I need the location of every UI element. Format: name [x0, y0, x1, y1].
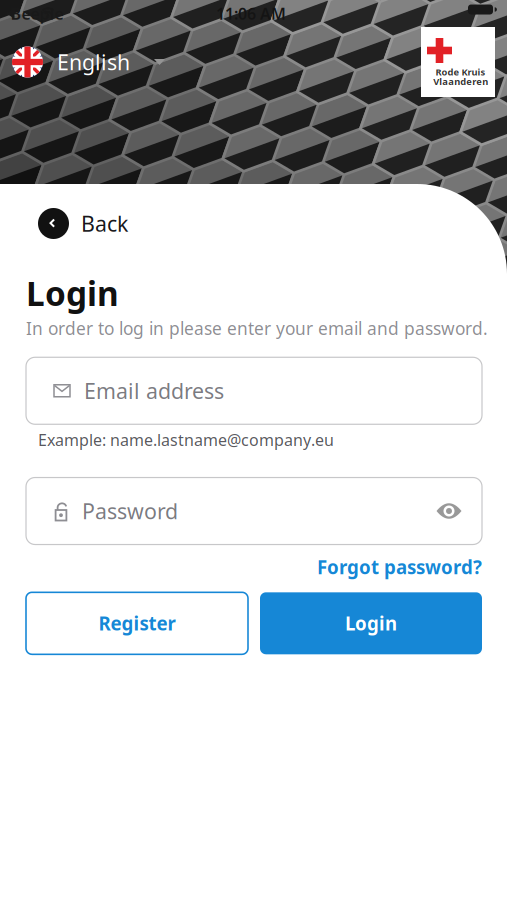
staticText: Login — [345, 611, 397, 636]
staticText: Password — [82, 497, 178, 525]
button[interactable]: Back — [38, 208, 128, 239]
staticText: Beeple — [10, 3, 63, 24]
staticText: Vlaanderen — [433, 75, 488, 88]
button[interactable]: Register — [26, 592, 248, 654]
staticText: Rode Kruis — [435, 66, 485, 78]
staticText: 11:06 AM — [216, 3, 286, 24]
staticText: Forgot password? — [317, 554, 482, 579]
staticText: Email address — [84, 377, 224, 405]
staticText: English — [57, 48, 130, 76]
button[interactable]: Forgot password? — [317, 554, 482, 579]
button[interactable]: English — [12, 46, 165, 77]
button[interactable]: Login — [260, 592, 482, 654]
staticText: In order to log in please enter your ema… — [26, 317, 488, 340]
staticText: Example: name.lastname@company.eu — [38, 429, 334, 450]
staticText: Register — [98, 611, 175, 636]
staticText: Login — [26, 271, 119, 315]
button[interactable]: Show password — [436, 502, 462, 520]
staticText: Back — [81, 209, 128, 238]
